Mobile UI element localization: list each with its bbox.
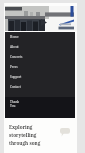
staticText: Exploring storytelling through song: [9, 124, 49, 147]
button[interactable]: About: [5, 42, 75, 52]
button[interactable]: Contact: [5, 82, 75, 92]
button[interactable]: Press: [5, 62, 75, 72]
staticText: Thank: [10, 100, 20, 104]
staticText: About: [10, 45, 19, 49]
button[interactable]: Support: [5, 72, 75, 82]
staticText: You: [10, 104, 16, 108]
button[interactable]: Concerts: [5, 52, 75, 62]
staticText: Home: [10, 35, 19, 39]
staticText: Concerts: [10, 55, 23, 59]
staticText: Support: [10, 75, 22, 79]
staticText: Press: [10, 65, 18, 69]
button[interactable]: Home: [5, 32, 75, 42]
button[interactable]: Thank: [5, 97, 75, 118]
staticText: Contact: [10, 85, 21, 89]
button[interactable]: Open chat: [58, 125, 72, 139]
